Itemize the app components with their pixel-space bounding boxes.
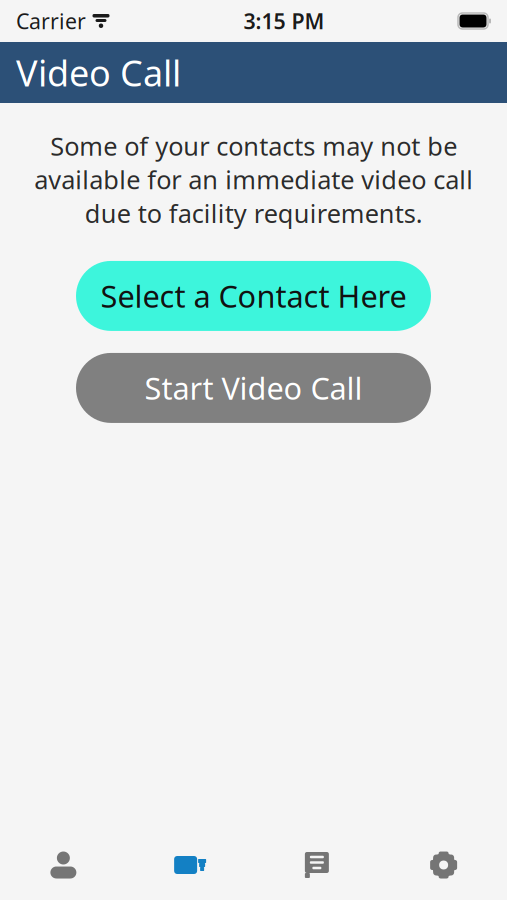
button[interactable]: Settings — [380, 837, 507, 893]
button[interactable]: Select a Contact Here — [76, 261, 431, 331]
button[interactable]: Contacts — [0, 837, 127, 893]
button[interactable]: Video Call — [127, 837, 254, 893]
staticText: Some of your contacts may not be availab… — [34, 129, 473, 230]
staticText: Select a Contact Here — [100, 276, 406, 316]
staticText: Video Call — [16, 49, 181, 96]
button[interactable]: Start Video Call — [76, 353, 431, 423]
staticText: 3:15 PM — [243, 7, 324, 35]
staticText: Carrier — [16, 7, 86, 35]
button[interactable]: Messages — [253, 837, 380, 893]
staticText: Start Video Call — [144, 368, 362, 408]
